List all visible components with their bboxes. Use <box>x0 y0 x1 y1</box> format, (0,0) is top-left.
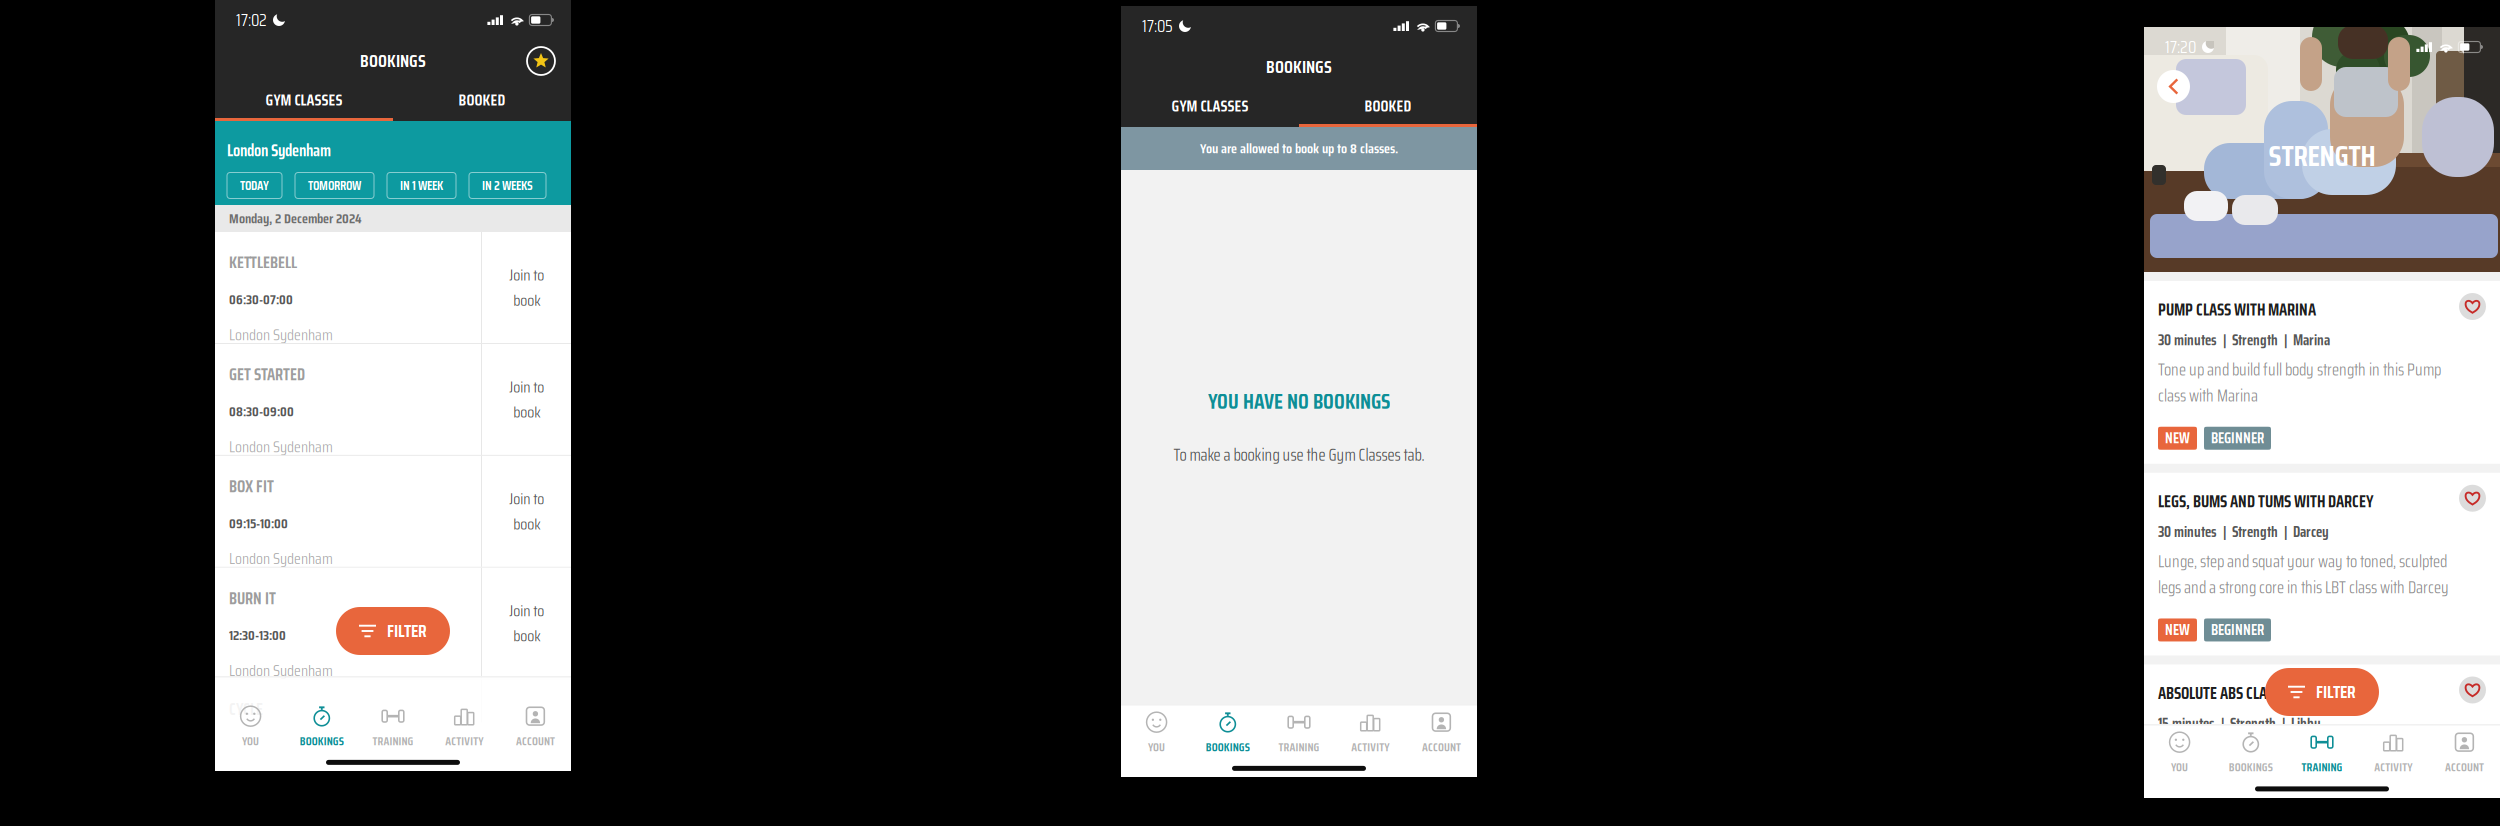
staticText: ACTIVITY <box>445 732 483 750</box>
staticText: LEGS, BUMS AND TUMS WITH DARCEY <box>2158 489 2374 514</box>
button[interactable]: YOU <box>1121 706 1192 759</box>
staticText: BOX FIT <box>229 474 274 499</box>
staticText: London Sydenham <box>229 658 333 683</box>
staticText: IN 1 WEEK <box>400 175 443 195</box>
button[interactable]: ACTIVITY <box>1335 706 1406 759</box>
staticText: ACCOUNT <box>2445 758 2484 776</box>
staticText: PUMP CLASS WITH MARINA <box>2158 297 2316 323</box>
staticText: BOOKINGS <box>2229 758 2273 776</box>
staticText: 17:20 <box>2165 33 2196 61</box>
staticText: ACTIVITY <box>2374 758 2412 776</box>
button[interactable]: ABSOLUTE ABS CLASS WITH LIBBY <box>2144 664 2500 821</box>
staticText: 08:30-09:00 <box>229 400 294 422</box>
staticText: Build core strength in this short abs cl… <box>2158 740 2454 766</box>
staticText: 09:15-10:00 <box>229 512 288 534</box>
staticText: London Sydenham <box>229 434 333 459</box>
staticText: BEGINNER <box>2211 618 2264 641</box>
button[interactable]: BOOKED <box>393 82 571 121</box>
button[interactable]: TRAINING <box>2286 726 2358 779</box>
staticText: BOOKINGS <box>360 47 426 75</box>
staticText: Join to book <box>509 598 544 648</box>
staticText: TODAY <box>240 175 269 195</box>
button[interactable]: ACCOUNT <box>500 678 571 753</box>
staticText: BEGINNER <box>2211 427 2264 450</box>
staticText: YOU <box>1148 738 1165 756</box>
staticText: IN 2 WEEKS <box>482 175 533 195</box>
staticText: STRENGTH <box>2268 133 2375 179</box>
staticText: BOOKINGS <box>1206 738 1250 756</box>
staticText: TRAINING <box>2301 758 2342 776</box>
button[interactable]: FILTER <box>2265 668 2379 716</box>
staticText: NEW <box>2165 618 2190 641</box>
staticText: Lunge, step and squat your way to toned,… <box>2158 548 2449 600</box>
button[interactable]: FILTER <box>336 607 450 655</box>
staticText: BEGINNER <box>2211 784 2264 807</box>
staticText: Join to book <box>509 374 544 425</box>
staticText: GYM CLASSES <box>265 88 342 112</box>
staticText: 17:02 <box>236 6 267 34</box>
staticText: 30 minutes | Strength | Darcey <box>2158 520 2329 543</box>
button[interactable]: BOOKED <box>1299 88 1477 127</box>
button[interactable]: ACCOUNT <box>2429 726 2500 779</box>
staticText: You are allowed to book up to 8 classes. <box>1200 138 1398 159</box>
staticText: TRAINING <box>1278 738 1319 756</box>
button[interactable]: BOOKINGS <box>2215 726 2286 779</box>
staticText: YOU <box>242 732 259 750</box>
button[interactable]: GYM CLASSES <box>215 82 393 121</box>
button[interactable]: TOMORROW <box>295 172 374 198</box>
button[interactable]: LEGS, BUMS AND TUMS WITH DARCEY <box>2144 473 2500 655</box>
staticText: FILTER <box>387 617 427 645</box>
staticText: Join to book <box>509 486 544 536</box>
staticText: To make a booking use the Gym Classes ta… <box>1173 442 1424 468</box>
staticText: 30 minutes | Strength | Marina <box>2158 329 2330 352</box>
button[interactable]: Favourites <box>524 44 558 78</box>
staticText: BURN IT <box>229 586 276 611</box>
button[interactable]: KETTLEBELL <box>215 232 571 343</box>
button[interactable]: ACTIVITY <box>2358 726 2429 779</box>
button[interactable]: GET STARTED <box>215 344 571 455</box>
staticText: YOU HAVE NO BOOKINGS <box>1208 385 1390 418</box>
staticText: NEW <box>2165 784 2190 807</box>
staticText: CYCLE <box>229 697 263 722</box>
button[interactable]: BOOKINGS <box>286 678 357 753</box>
staticText: BOOKED <box>1364 94 1411 118</box>
button[interactable]: TRAINING <box>357 678 429 753</box>
staticText: Monday, 2 December 2024 <box>229 208 362 229</box>
staticText: BOOKED <box>458 88 505 112</box>
staticText: ACTIVITY <box>1351 738 1389 756</box>
staticText: ACCOUNT <box>516 732 555 750</box>
button[interactable]: BURN IT <box>215 568 571 679</box>
staticText: KETTLEBELL <box>229 250 297 276</box>
staticText: GYM CLASSES <box>1171 94 1248 118</box>
staticText: 15 minutes | Strength | Libby <box>2158 712 2321 735</box>
staticText: 06:30-07:00 <box>229 289 293 310</box>
button[interactable]: BOOKINGS <box>1192 706 1263 759</box>
staticText: 12:30-13:00 <box>229 624 286 646</box>
staticText: TRAINING <box>372 732 413 750</box>
staticText: YOU <box>2171 758 2188 776</box>
staticText: FILTER <box>2316 678 2356 706</box>
staticText: 17:05 <box>1142 12 1173 40</box>
button[interactable]: BOX FIT <box>215 456 571 567</box>
button[interactable]: YOU <box>2144 726 2215 779</box>
button[interactable]: IN 1 WEEK <box>387 172 456 198</box>
button[interactable]: TRAINING <box>1263 706 1335 759</box>
button[interactable]: PUMP CLASS WITH MARINA <box>2144 281 2500 464</box>
staticText: London Sydenham <box>229 322 333 347</box>
staticText: Tone up and build full body strength in … <box>2158 357 2441 409</box>
staticText: BOOKINGS <box>300 732 344 750</box>
staticText: NEW <box>2165 427 2190 450</box>
staticText: London Sydenham <box>229 546 333 571</box>
button[interactable]: YOU <box>215 678 286 753</box>
button[interactable]: ACTIVITY <box>429 678 500 753</box>
button[interactable]: ACCOUNT <box>1406 706 1477 759</box>
staticText: BOOKINGS <box>1266 53 1332 81</box>
staticText: ACCOUNT <box>1422 738 1461 756</box>
button[interactable]: IN 2 WEEKS <box>469 172 546 198</box>
staticText: ABSOLUTE ABS CLASS WITH LIBBY <box>2158 680 2352 706</box>
staticText: Join to book <box>509 262 544 313</box>
button[interactable]: TODAY <box>227 172 282 198</box>
staticText: London Sydenham <box>227 138 331 163</box>
button[interactable]: Back <box>2157 70 2190 103</box>
button[interactable]: GYM CLASSES <box>1121 88 1299 127</box>
